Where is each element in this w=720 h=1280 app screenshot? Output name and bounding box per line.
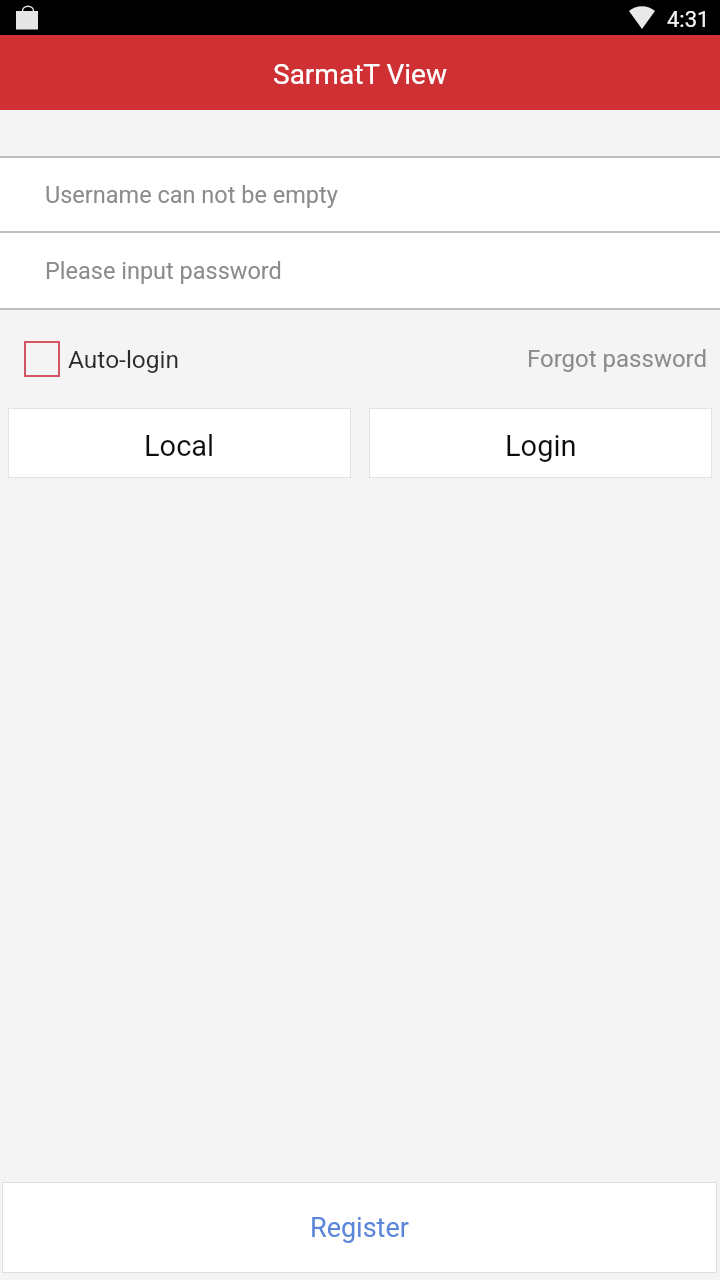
- button[interactable]: Username can not be empty: [0, 158, 720, 231]
- staticText: Login: [505, 429, 577, 463]
- staticText: Forgot password: [527, 345, 708, 373]
- staticText: Auto-login: [68, 345, 180, 374]
- staticText: Register: [310, 1212, 409, 1244]
- staticText: Local: [144, 429, 215, 463]
- button[interactable]: Local: [8, 408, 351, 478]
- other: App notification: [0, 0, 40, 35]
- button[interactable]: Register: [2, 1182, 717, 1273]
- staticText: Username can not be empty: [45, 181, 338, 209]
- staticText: Please input password: [45, 257, 282, 285]
- button[interactable]: Auto-login: [0, 329, 196, 389]
- button[interactable]: Please input password: [0, 233, 720, 308]
- staticText: SarmatT View: [273, 58, 447, 91]
- staticText: 4:31: [667, 7, 710, 33]
- button[interactable]: Forgot password: [507, 331, 720, 387]
- other: Wi-Fi signal: [629, 7, 655, 29]
- button[interactable]: Login: [369, 408, 712, 478]
